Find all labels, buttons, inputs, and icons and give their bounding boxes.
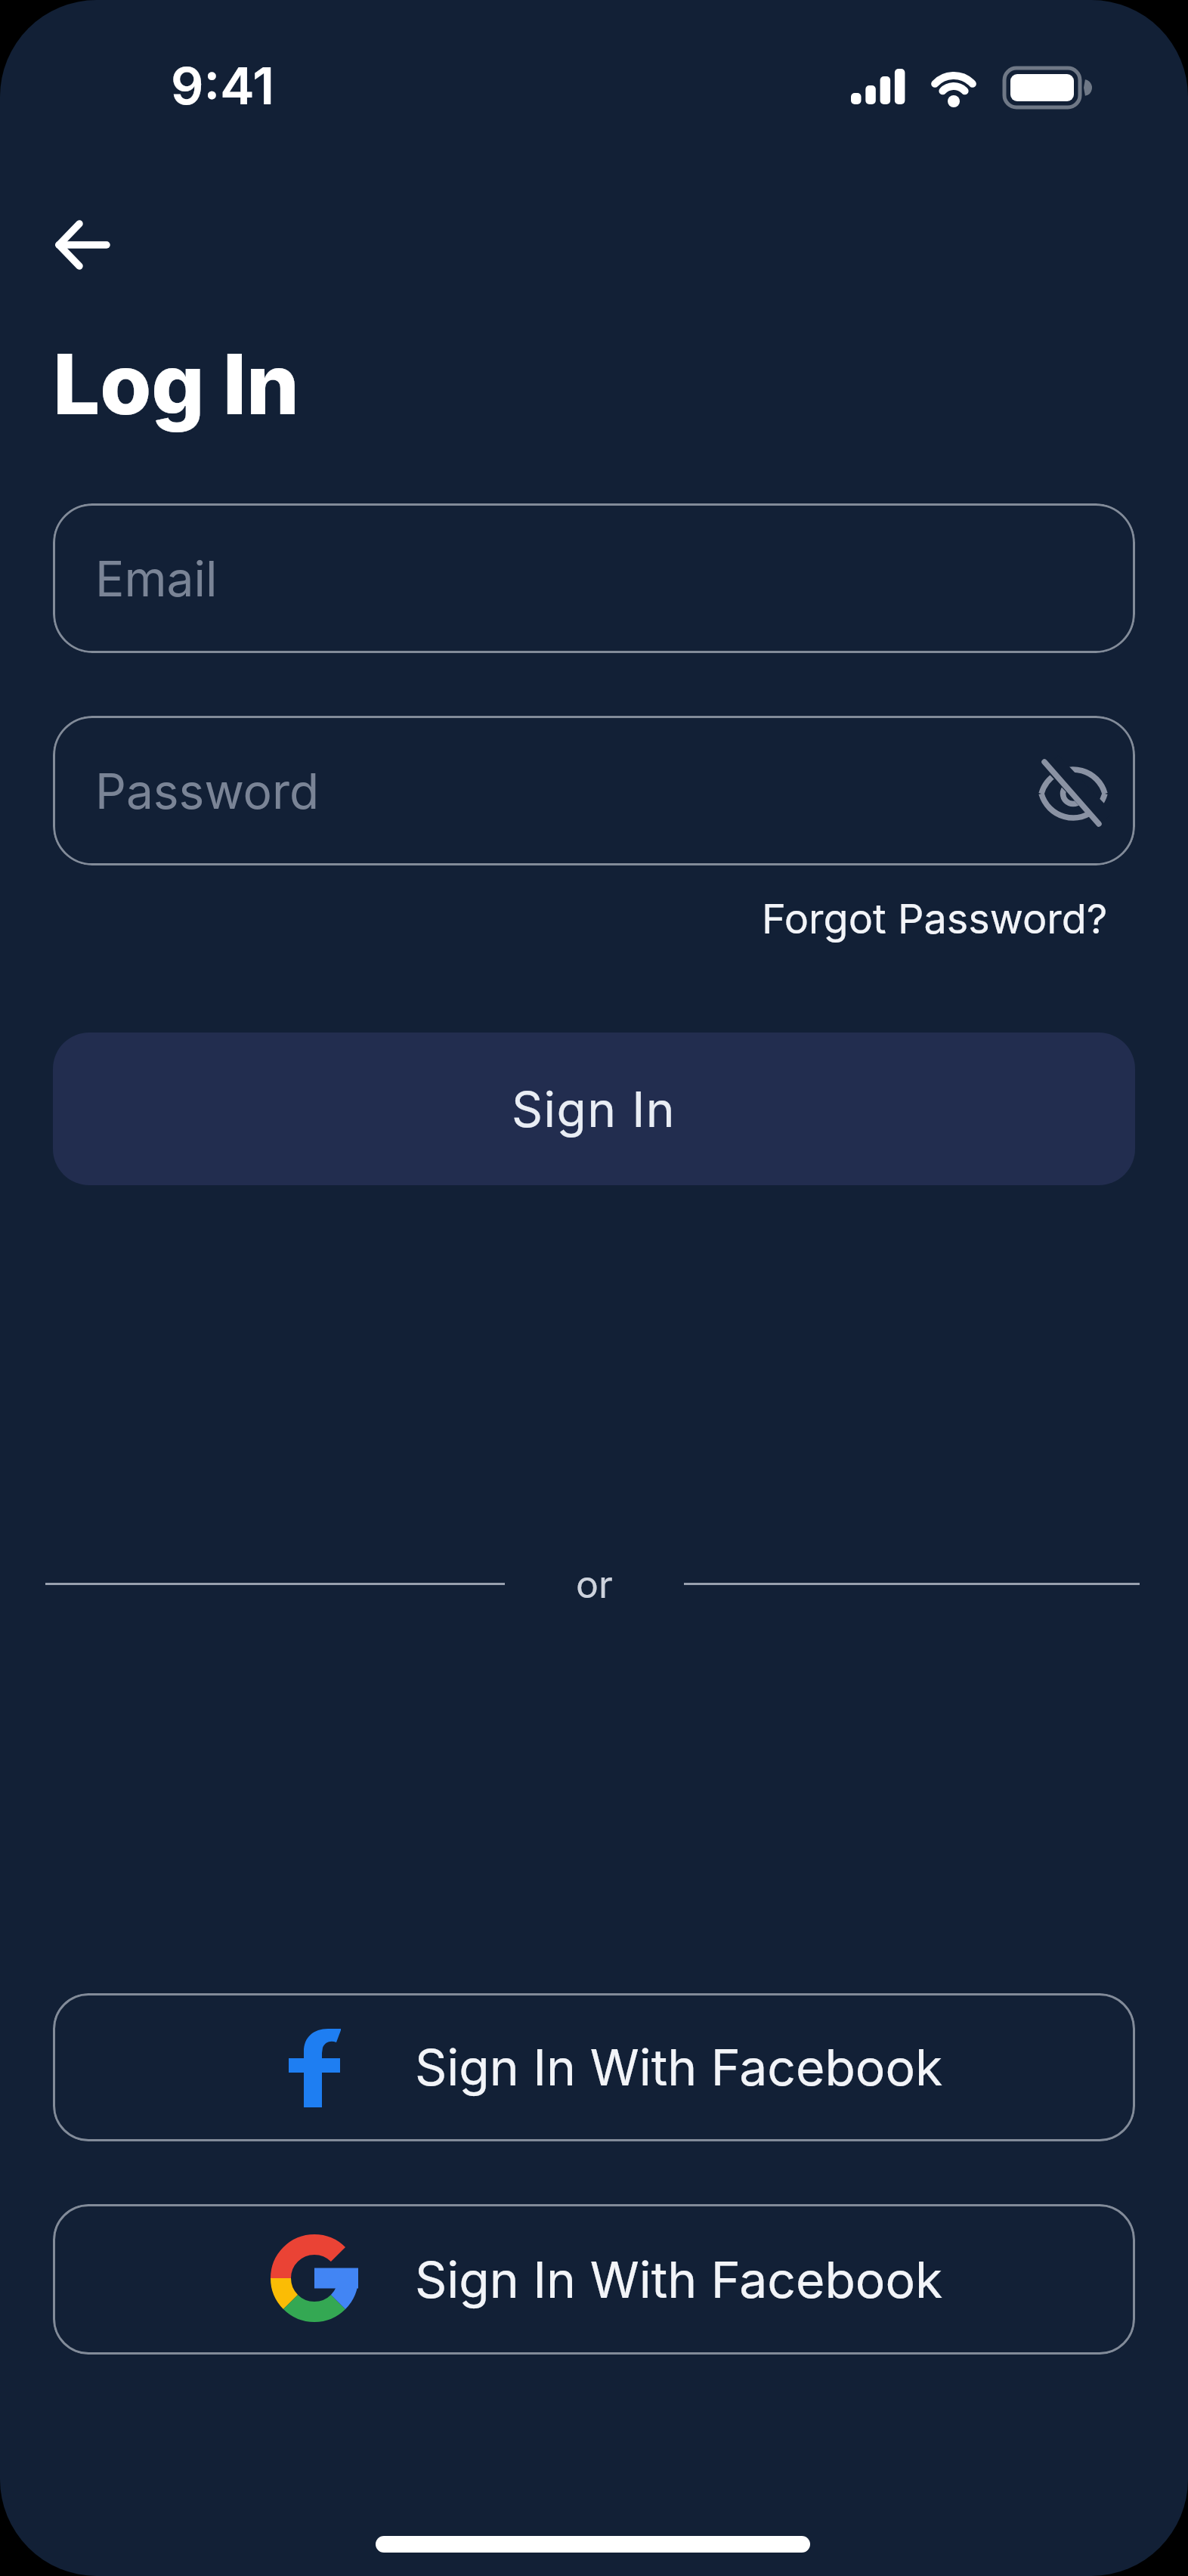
staticText: Log In: [53, 333, 299, 434]
button[interactable]: Sign In: [53, 1033, 1135, 1185]
staticText: Sign In With Facebook: [415, 2249, 943, 2310]
staticText: Forgot Password?: [762, 894, 1108, 943]
button[interactable]: [45, 212, 118, 278]
button[interactable]: [1028, 748, 1118, 836]
button[interactable]: Sign In With Facebook: [53, 2204, 1135, 2355]
staticText: Email: [95, 550, 218, 608]
staticText: Password: [95, 762, 320, 820]
staticText: Sign In: [512, 1080, 676, 1138]
staticText: or: [576, 1562, 613, 1607]
staticText: Sign In With Facebook: [415, 2037, 943, 2098]
button[interactable]: Password: [53, 716, 1135, 865]
staticText: 9:41: [171, 54, 275, 116]
button[interactable]: Email: [53, 503, 1135, 653]
button[interactable]: Sign In With Facebook: [53, 1993, 1135, 2141]
button[interactable]: Forgot Password?: [730, 892, 1108, 945]
